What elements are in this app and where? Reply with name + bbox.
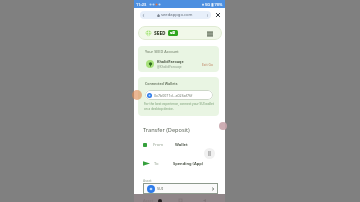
button[interactable]: SUI bbox=[147, 183, 215, 194]
button[interactable]: Exit Go bbox=[202, 62, 213, 66]
button[interactable]: Swap direction bbox=[204, 148, 215, 159]
staticText: SUI bbox=[157, 186, 164, 191]
staticText: 11:23 bbox=[136, 2, 147, 7]
button[interactable]: Back bbox=[202, 198, 207, 202]
staticText: Transfer (Deposit) bbox=[143, 126, 190, 134]
staticText: KhalidFarouqe bbox=[157, 59, 184, 64]
staticText: From bbox=[153, 142, 164, 147]
staticText: For the best experience, connect your SU… bbox=[144, 102, 214, 111]
button[interactable]: Menu bbox=[205, 29, 214, 38]
staticText: ▾ 5G ▮ 78% bbox=[202, 2, 223, 7]
staticText: SEED bbox=[154, 30, 166, 37]
button[interactable]: Page info bbox=[204, 12, 211, 19]
staticText: @KhalidFarouqe bbox=[157, 65, 182, 69]
staticText: Exit Go bbox=[202, 62, 213, 66]
staticText: Spending (App) bbox=[173, 161, 204, 166]
staticText: 0x7b0071d...a026af76f bbox=[154, 93, 193, 98]
button[interactable]: 0x7b0071d...a026af76f bbox=[147, 90, 211, 100]
staticText: Connected Wallets bbox=[145, 81, 178, 86]
staticText: v2 bbox=[170, 30, 176, 36]
staticText: To bbox=[154, 161, 159, 166]
staticText: Asset bbox=[143, 178, 152, 183]
button[interactable]: Back bbox=[140, 12, 147, 19]
staticText: seedappgo.com bbox=[161, 12, 193, 18]
staticText: Your SEED Account bbox=[145, 49, 179, 54]
button[interactable]: Home bbox=[157, 198, 162, 202]
button[interactable]: Close bbox=[213, 10, 222, 19]
staticText: Wallet bbox=[175, 142, 188, 147]
button[interactable]: SEED bbox=[145, 26, 214, 40]
button[interactable]: Back bbox=[140, 11, 211, 19]
staticText: Asset bbox=[143, 198, 154, 202]
